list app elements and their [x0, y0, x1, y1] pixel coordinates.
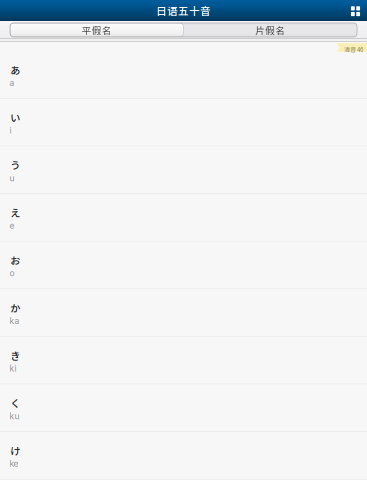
staticText: ke [9, 458, 18, 469]
staticText: u [9, 173, 14, 183]
staticText: ka [9, 316, 19, 326]
staticText: 片假名 [255, 23, 285, 37]
staticText: 清音 46 [344, 45, 363, 54]
button[interactable]: け [0, 432, 367, 480]
button[interactable]: く [0, 384, 367, 432]
button[interactable]: う [0, 146, 367, 194]
staticText: o [9, 268, 14, 278]
button[interactable]: お [0, 242, 367, 289]
staticText: i [9, 125, 11, 136]
button[interactable]: か [0, 289, 367, 337]
staticText: お [10, 253, 20, 267]
button[interactable]: あ [0, 51, 367, 99]
button[interactable]: Grid layout [344, 0, 366, 21]
staticText: ki [9, 363, 16, 374]
button[interactable]: え [0, 194, 367, 242]
staticText: け [10, 443, 20, 458]
staticText: e [9, 220, 14, 231]
staticText: a [9, 78, 14, 88]
staticText: か [10, 300, 20, 315]
button[interactable]: 片假名 [183, 23, 357, 37]
button[interactable]: い [0, 99, 367, 146]
staticText: う [10, 158, 20, 172]
button[interactable]: 平假名 [10, 23, 183, 37]
staticText: い [10, 110, 20, 125]
staticText: ku [9, 411, 19, 421]
staticText: く [10, 396, 20, 410]
staticText: 日语五十音 [156, 3, 211, 18]
staticText: 平假名 [82, 23, 112, 37]
staticText: あ [10, 62, 20, 77]
button[interactable]: き [0, 337, 367, 384]
staticText: え [10, 205, 20, 220]
staticText: き [10, 348, 20, 363]
